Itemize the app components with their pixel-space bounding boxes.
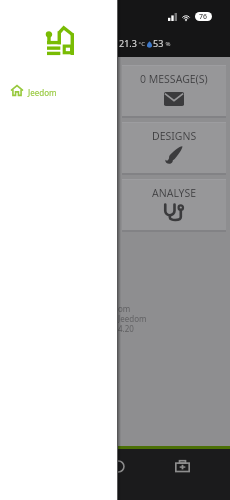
staticText: %	[164, 40, 171, 48]
button[interactable]: Jeedom	[0, 80, 117, 100]
staticText: ANALYSE	[152, 186, 197, 200]
staticText: 21.3	[119, 37, 137, 49]
button[interactable]	[122, 122, 226, 175]
button[interactable]	[122, 179, 226, 232]
button[interactable]: Health	[168, 452, 196, 480]
staticText: °C	[137, 40, 145, 48]
staticText: 53	[153, 37, 164, 49]
staticText: Jeedom	[28, 87, 57, 98]
staticText: DESIGNS	[152, 129, 197, 143]
staticText: om	[118, 303, 131, 313]
staticText: Jeedom	[118, 313, 147, 323]
staticText: 76	[199, 12, 208, 21]
staticText: 0 MESSAGE(S)	[140, 72, 208, 86]
staticText: 4.20	[118, 323, 134, 333]
button[interactable]	[122, 65, 226, 118]
button[interactable]: Dashboard	[104, 452, 132, 480]
